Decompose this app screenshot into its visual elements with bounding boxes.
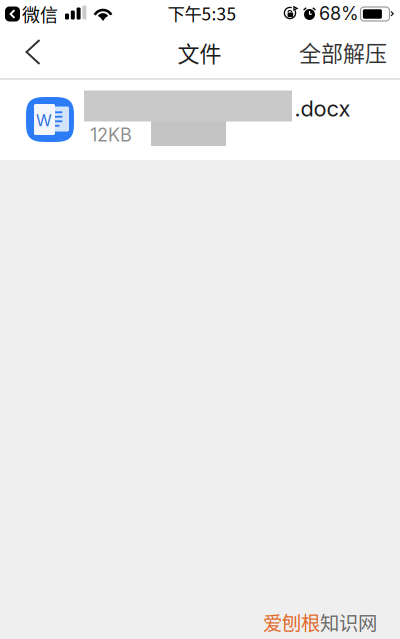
staticText: 12KB — [90, 124, 132, 146]
staticText: 知识网 — [320, 608, 377, 636]
staticText: 全部解压 — [299, 36, 387, 68]
staticText: 下午5:35 — [167, 0, 236, 26]
staticText: 文件 — [177, 37, 221, 68]
button[interactable]: W — [0, 80, 400, 160]
staticText: 微信 — [22, 1, 58, 27]
staticText: 68% — [319, 3, 359, 24]
staticText: 爱刨根 — [263, 608, 320, 636]
staticText: W — [36, 111, 52, 130]
button[interactable]: 全部解压 — [285, 24, 400, 80]
button[interactable]: 返回 — [9, 26, 56, 77]
staticText: .docx — [294, 95, 350, 122]
